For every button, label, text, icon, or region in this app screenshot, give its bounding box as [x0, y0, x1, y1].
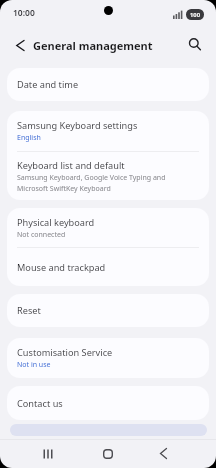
staticText: Reset [17, 304, 41, 317]
button[interactable] [0, 28, 44, 62]
button[interactable]: Keyboard list and default [7, 152, 209, 200]
button[interactable]: Customisation Service [7, 338, 209, 378]
button[interactable]: Reset [7, 294, 209, 327]
staticText: Not in use [17, 360, 51, 370]
staticText: Physical keyboard [17, 216, 95, 229]
button[interactable]: Date and time [7, 68, 209, 101]
staticText: Not connected [17, 230, 66, 240]
staticText: Contact us [17, 397, 63, 410]
button[interactable]: Physical keyboard [7, 208, 209, 247]
button[interactable] [93, 439, 123, 468]
button[interactable] [176, 28, 216, 62]
staticText: 100 [190, 11, 200, 19]
staticText: General management [33, 38, 153, 53]
staticText: Samsung Keyboard settings [17, 119, 138, 132]
button[interactable] [148, 439, 178, 468]
staticText: Mouse and trackpad [17, 261, 106, 274]
staticText: 10:00 [13, 7, 35, 19]
staticText: Samsung Keyboard, Google Voice Typing an… [17, 173, 166, 193]
button[interactable] [33, 439, 63, 468]
staticText: Date and time [17, 78, 79, 91]
staticText: English [17, 133, 41, 143]
staticText: Customisation Service [17, 346, 113, 359]
button[interactable]: Contact us [7, 386, 209, 420]
button[interactable]: Mouse and trackpad [7, 248, 209, 286]
button[interactable]: Samsung Keyboard settings [7, 111, 209, 151]
staticText: Keyboard list and default [17, 159, 125, 172]
